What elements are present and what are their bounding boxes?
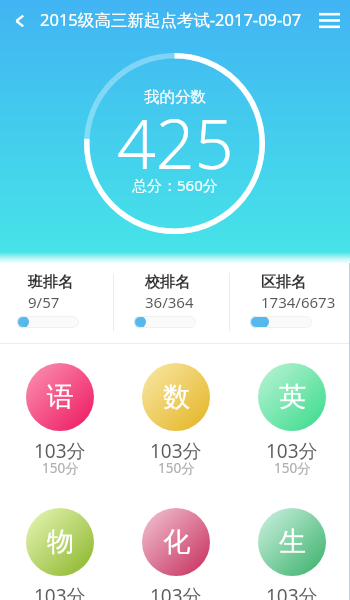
button[interactable]: Back xyxy=(0,1,40,41)
staticText: 数 xyxy=(163,380,190,414)
button[interactable]: 班排名 xyxy=(0,264,116,328)
staticText: 2015级高三新起点考试-2017-09-07 xyxy=(40,8,308,31)
staticText: 150分 xyxy=(158,459,195,477)
staticText: 150分 xyxy=(274,459,311,477)
staticText: 103分 xyxy=(150,438,202,464)
staticText: 36/364 xyxy=(145,292,194,312)
staticText: 103分 xyxy=(266,438,318,464)
staticText: 103分 xyxy=(150,583,202,600)
button[interactable]: 数 xyxy=(118,363,234,482)
button[interactable]: 化 xyxy=(118,508,234,600)
staticText: 英 xyxy=(279,380,306,414)
staticText: 425 xyxy=(117,96,234,189)
staticText: 化 xyxy=(163,525,190,559)
button[interactable]: 物 xyxy=(2,508,118,600)
staticText: 生 xyxy=(279,525,306,559)
staticText: 校排名 xyxy=(145,273,190,292)
button[interactable]: 校排名 xyxy=(117,264,233,328)
staticText: 物 xyxy=(47,525,74,559)
staticText: 区排名 xyxy=(261,273,306,292)
staticText: 班排名 xyxy=(28,273,73,292)
staticText: 1734/6673 xyxy=(261,292,336,312)
button[interactable]: Menu xyxy=(308,0,350,41)
button[interactable]: 生 xyxy=(234,508,350,600)
staticText: 103分 xyxy=(266,583,318,600)
button[interactable]: 英 xyxy=(234,363,350,482)
staticText: 9/57 xyxy=(28,292,60,312)
staticText: 150分 xyxy=(42,459,79,477)
button[interactable]: 区排名 xyxy=(233,264,350,328)
button[interactable]: 语 xyxy=(2,363,118,482)
staticText: 总分：560分 xyxy=(132,175,218,195)
staticText: 103分 xyxy=(34,438,86,464)
staticText: 语 xyxy=(47,380,74,414)
staticText: 我的分数 xyxy=(144,87,206,107)
staticText: 103分 xyxy=(34,583,86,600)
